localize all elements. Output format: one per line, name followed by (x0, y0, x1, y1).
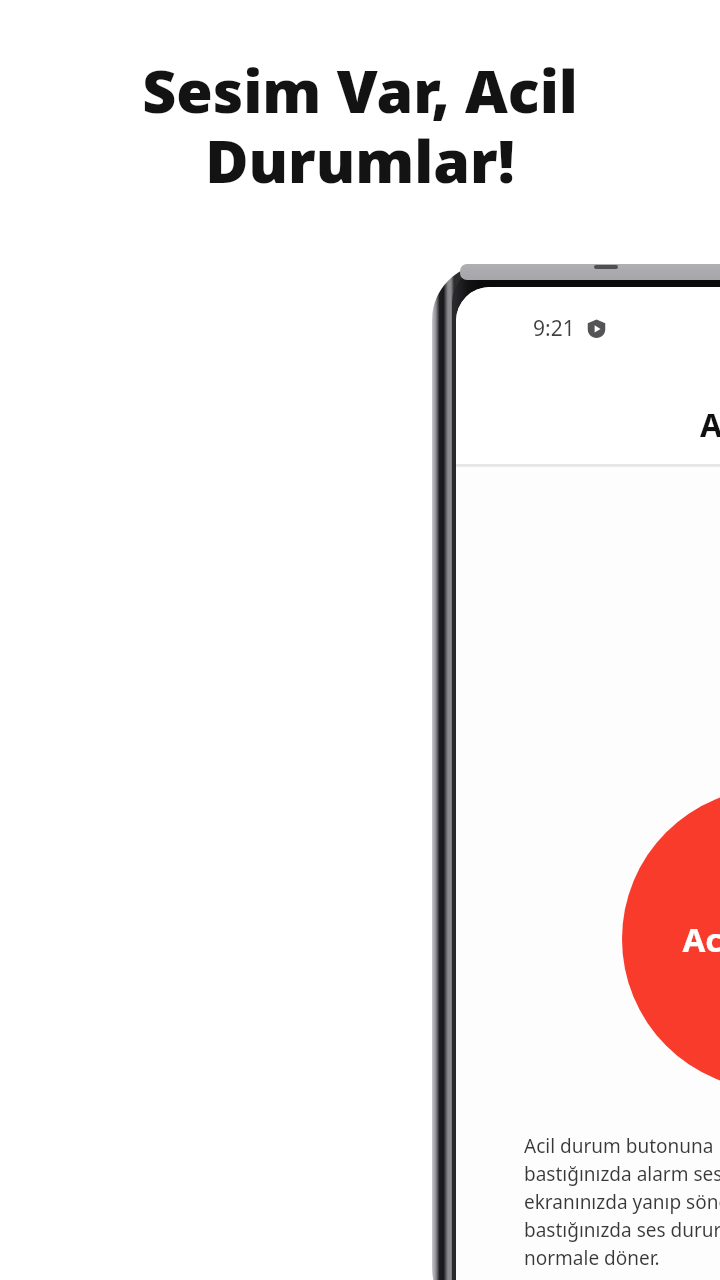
staticText: Acil Durum (700, 403, 720, 447)
staticText: Acil durum butonuna bastığınızda alarm s… (524, 1133, 720, 1271)
staticText: 9:21 (533, 314, 575, 343)
button[interactable]: Acil Durum (622, 788, 720, 1090)
staticText: Acil Durum (682, 917, 720, 962)
staticText: Sesim Var, Acil Durumlar! (40, 50, 680, 200)
other: Protected (587, 319, 606, 338)
